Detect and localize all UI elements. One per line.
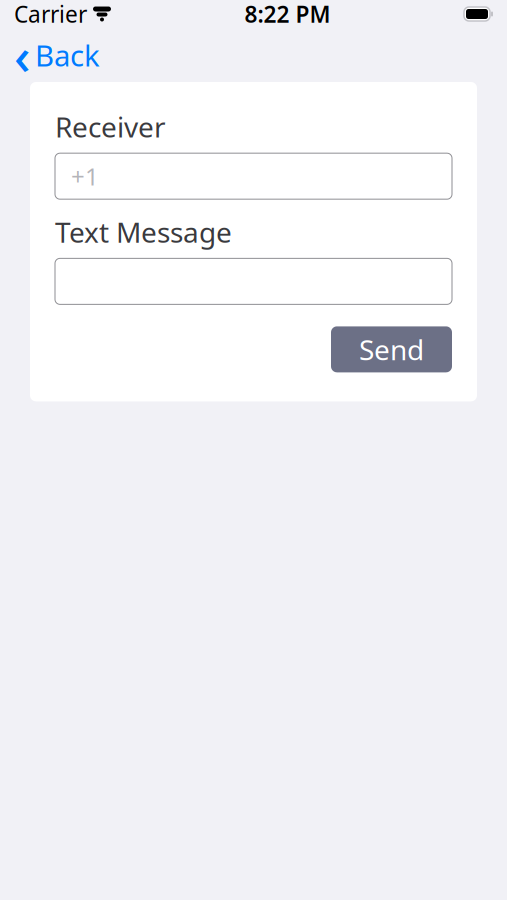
staticText: Text Message [55,213,232,250]
staticText: +1 [71,160,99,192]
staticText: Carrier [14,0,87,29]
button[interactable]: ‹ [0,15,114,95]
button[interactable] [55,258,452,304]
button[interactable]: Send [331,326,452,372]
staticText: Receiver [55,108,166,145]
staticText: 8:22 PM [244,0,330,29]
button[interactable]: +1 [55,153,452,199]
staticText: Send [359,331,424,368]
staticText: Back [35,35,100,74]
staticText: ‹ [14,21,31,89]
